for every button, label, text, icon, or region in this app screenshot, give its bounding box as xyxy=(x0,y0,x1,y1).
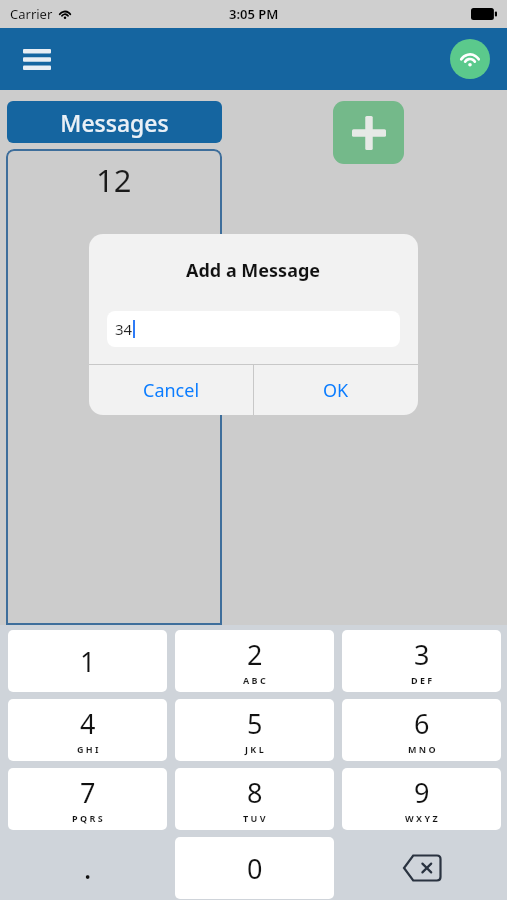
staticText: D E F xyxy=(411,674,433,686)
staticText: 5 xyxy=(247,705,263,742)
staticText: 12 xyxy=(96,159,132,201)
button[interactable]: Messages xyxy=(7,101,222,143)
staticText: A B C xyxy=(243,674,266,686)
staticText: 9 xyxy=(414,774,430,811)
button[interactable]: 8 xyxy=(175,768,334,830)
button[interactable]: 6 xyxy=(342,699,501,761)
button[interactable]: Wi-Fi status xyxy=(450,39,490,79)
staticText: 3 xyxy=(414,636,430,673)
button[interactable]: . xyxy=(8,837,167,899)
staticText: M N O xyxy=(408,743,436,755)
staticText: 2 xyxy=(247,636,263,673)
staticText: . xyxy=(84,850,92,887)
button[interactable]: OK xyxy=(254,365,418,415)
button[interactable]: Add a message xyxy=(333,101,404,164)
button[interactable]: 34 xyxy=(107,311,400,347)
button[interactable]: 5 xyxy=(175,699,334,761)
staticText: OK xyxy=(323,378,349,403)
staticText: 4 xyxy=(80,705,96,742)
staticText: 8 xyxy=(247,774,263,811)
staticText: 1 xyxy=(80,643,96,680)
staticText: 3:05 PM xyxy=(229,5,279,23)
staticText: J K L xyxy=(245,743,264,755)
staticText: T U V xyxy=(243,812,266,824)
staticText: W X Y Z xyxy=(405,812,438,824)
staticText: 34 xyxy=(115,319,133,339)
button[interactable]: 7 xyxy=(8,768,167,830)
button[interactable]: 9 xyxy=(342,768,501,830)
staticText: Cancel xyxy=(143,378,200,403)
staticText: 6 xyxy=(414,705,430,742)
staticText: G H I xyxy=(77,743,99,755)
button[interactable]: Cancel xyxy=(89,365,253,415)
button[interactable]: 12 xyxy=(6,149,222,625)
staticText: 7 xyxy=(80,774,96,811)
button[interactable]: Delete xyxy=(342,837,501,899)
button[interactable]: 2 xyxy=(175,630,334,692)
staticText: Carrier xyxy=(10,5,53,23)
button[interactable]: 4 xyxy=(8,699,167,761)
button[interactable]: 0 xyxy=(175,837,334,899)
staticText: Messages xyxy=(60,107,169,138)
button[interactable]: 3 xyxy=(342,630,501,692)
staticText: Add a Message xyxy=(186,258,321,283)
staticText: P Q R S xyxy=(72,812,103,824)
button[interactable]: 1 xyxy=(8,630,167,692)
button[interactable]: Menu xyxy=(16,38,58,80)
staticText: 0 xyxy=(247,850,263,887)
